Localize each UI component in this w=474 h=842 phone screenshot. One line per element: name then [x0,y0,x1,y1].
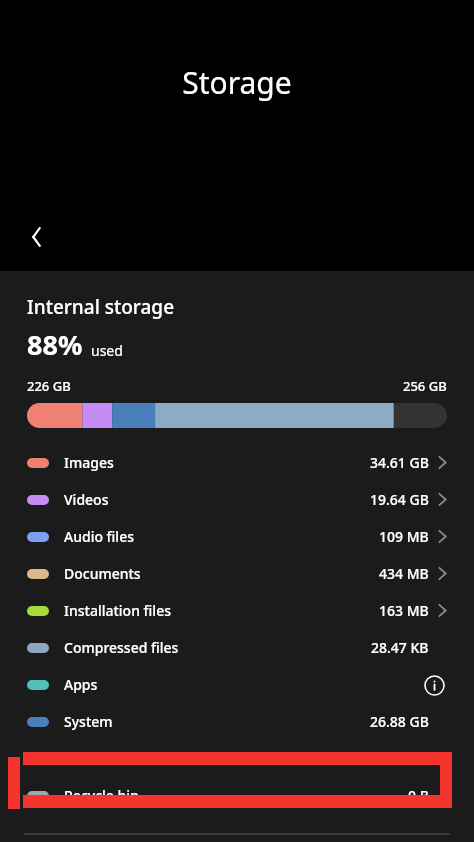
staticText: 19.64 GB [370,490,429,509]
staticText: Images [64,453,114,472]
staticText: 88% [27,326,83,363]
staticText: System [64,712,113,731]
staticText: 109 MB [379,527,429,546]
button[interactable]: Compressed files [0,629,474,666]
button[interactable]: Installation files [0,592,474,629]
staticText: 163 MB [379,601,429,620]
staticText: Audio files [64,527,134,546]
button[interactable]: Videos [0,481,474,518]
button[interactable]: Recycle bin [0,777,474,814]
staticText: 434 MB [379,564,429,583]
staticText: Internal storage [27,294,175,320]
staticText: Videos [64,490,109,509]
button[interactable]: Documents [0,555,474,592]
button[interactable]: Apps [0,666,474,703]
staticText: 226 GB [27,377,71,395]
staticText: 28.47 KB [371,638,429,657]
staticText: 0 B [408,786,429,805]
button[interactable]: Other [0,740,474,777]
button[interactable]: Images [0,444,474,481]
staticText: used [91,341,123,360]
staticText: 26.88 GB [370,712,429,731]
staticText: Apps [64,675,98,694]
staticText: Compressed files [64,638,179,657]
button[interactable]: Back [14,214,60,260]
staticText: Documents [64,564,141,583]
button[interactable]: Audio files [0,518,474,555]
staticText: 256 GB [403,377,447,395]
staticText: 34.61 GB [370,453,429,472]
staticText: 144 GB [382,749,429,768]
staticText: Installation files [64,601,171,620]
staticText: Other [64,749,104,768]
staticText: Recycle bin [64,786,139,805]
staticText: Storage [0,62,474,103]
button[interactable]: Apps info [421,672,447,698]
button[interactable]: System [0,703,474,740]
